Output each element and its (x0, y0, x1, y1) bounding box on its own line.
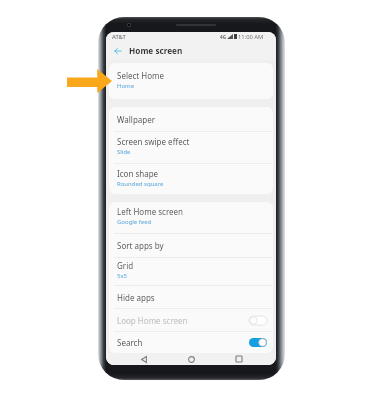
button[interactable]: Back (134, 353, 154, 365)
staticText: Screen swipe effect (117, 136, 190, 147)
staticText: Rounded square (117, 180, 164, 188)
staticText: Slide (117, 148, 131, 156)
staticText: AT&T (112, 33, 126, 41)
button[interactable]: Hide apps (109, 286, 273, 308)
staticText: 4G (220, 34, 226, 40)
button[interactable]: Loop Home screen (109, 309, 273, 331)
button[interactable]: Recent apps (229, 353, 249, 365)
staticText: Sort apps by (117, 240, 164, 251)
button[interactable]: Loop Home screen off (249, 316, 267, 325)
staticText: Google feed (117, 218, 152, 226)
button[interactable]: Icon shape (109, 164, 273, 194)
button[interactable]: Search on (249, 338, 267, 347)
button[interactable]: Search (109, 332, 273, 353)
button[interactable]: Wallpaper (109, 107, 273, 131)
staticText: Select Home (117, 70, 165, 81)
staticText: Home screen (129, 45, 183, 56)
staticText: Icon shape (117, 168, 159, 179)
staticText: Left Home screen (117, 206, 184, 217)
button[interactable]: Grid (109, 258, 273, 285)
button[interactable]: Back (106, 41, 129, 60)
staticText: Home (117, 82, 135, 90)
button[interactable]: Left Home screen (109, 202, 273, 233)
staticText: 5x5 (117, 272, 128, 280)
button[interactable]: Select Home (109, 63, 273, 99)
button[interactable]: Sort apps by (109, 234, 273, 257)
staticText: Hide apps (117, 292, 155, 303)
staticText: Grid (117, 260, 134, 271)
staticText: 11:00 AM (238, 33, 264, 41)
staticText: Loop Home screen (117, 315, 188, 326)
button[interactable]: Screen swipe effect (109, 132, 273, 163)
staticText: Search (117, 337, 143, 348)
staticText: Wallpaper (117, 114, 156, 125)
button[interactable]: Home (181, 353, 201, 365)
